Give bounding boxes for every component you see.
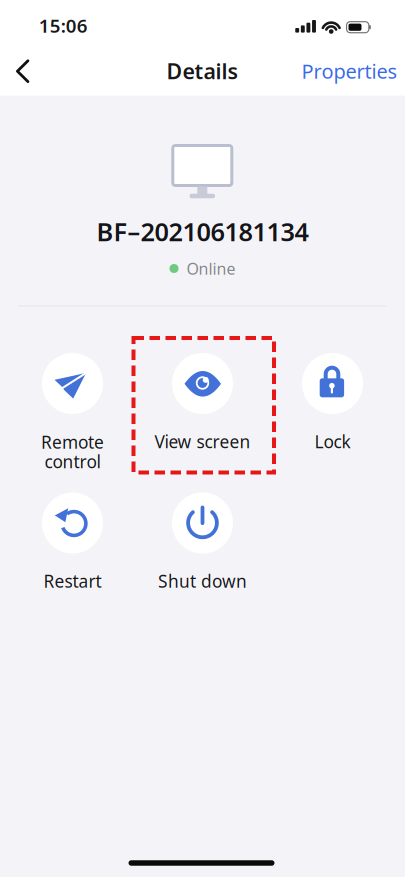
button[interactable]: View screen [137,350,267,452]
button[interactable]: Restart [7,490,137,592]
staticText: 15:06 [39,13,88,38]
staticText: Restart [43,569,101,592]
staticText: Online [186,258,235,279]
staticText: Shut down [158,569,247,592]
button[interactable]: Properties [301,58,397,84]
staticText: Remote [41,430,104,453]
button[interactable]: Lock [267,350,397,452]
button[interactable]: Back [6,56,46,88]
staticText: control [44,450,100,473]
staticText: Details [166,57,238,85]
button[interactable]: Remote [7,350,137,472]
staticText: Properties [301,58,397,84]
staticText: View screen [154,430,250,453]
button[interactable]: Shut down [137,490,267,592]
staticText: BF–202106181134 [96,215,308,248]
staticText: Lock [314,430,350,453]
